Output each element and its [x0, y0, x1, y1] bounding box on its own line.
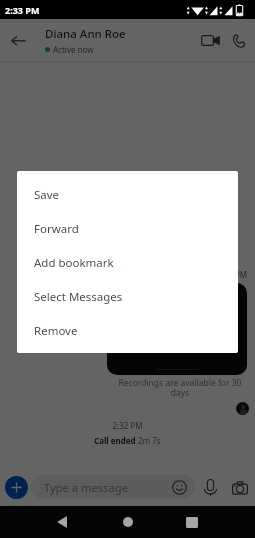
staticText: Type a message — [44, 480, 128, 495]
button[interactable]: Type a message — [31, 475, 195, 499]
staticText: Active now — [53, 44, 94, 55]
button[interactable]: Voice message — [199, 476, 222, 499]
button[interactable]: Add bookmark — [17, 246, 238, 280]
button[interactable]: Camera — [228, 476, 251, 499]
button[interactable]: Back — [0, 19, 36, 62]
button[interactable]: Recent apps — [175, 506, 208, 538]
button[interactable]: Remove — [17, 314, 238, 348]
button[interactable]: Video recording — [107, 283, 247, 375]
staticText: Select Messages — [34, 289, 123, 305]
button[interactable]: Diana Ann Roe avatar — [236, 402, 249, 415]
staticText: 2:33 PM — [5, 4, 40, 16]
button[interactable]: Video call — [197, 19, 224, 62]
button[interactable]: Back — [45, 506, 78, 538]
staticText: Diana Ann Roe — [45, 26, 126, 42]
staticText: Recordings are available for 30 days — [115, 377, 245, 398]
staticText: 2:33 PM — [217, 269, 248, 280]
button[interactable]: Call — [225, 19, 252, 62]
staticText: Save — [34, 187, 60, 203]
staticText: Forward — [34, 221, 79, 237]
staticText: 2:32 PM — [0, 420, 255, 431]
button[interactable]: Home — [111, 506, 144, 538]
staticText: Call ended — [94, 435, 138, 446]
button[interactable]: Emoji — [169, 477, 189, 497]
staticText: Add bookmark — [34, 255, 114, 271]
staticText: Remove — [34, 323, 78, 339]
button[interactable]: Select Messages — [17, 280, 238, 314]
button[interactable]: Add attachment — [5, 476, 28, 499]
button[interactable]: Save — [17, 178, 238, 212]
staticText: 2m 7s — [138, 435, 161, 446]
button[interactable]: Forward — [17, 212, 238, 246]
